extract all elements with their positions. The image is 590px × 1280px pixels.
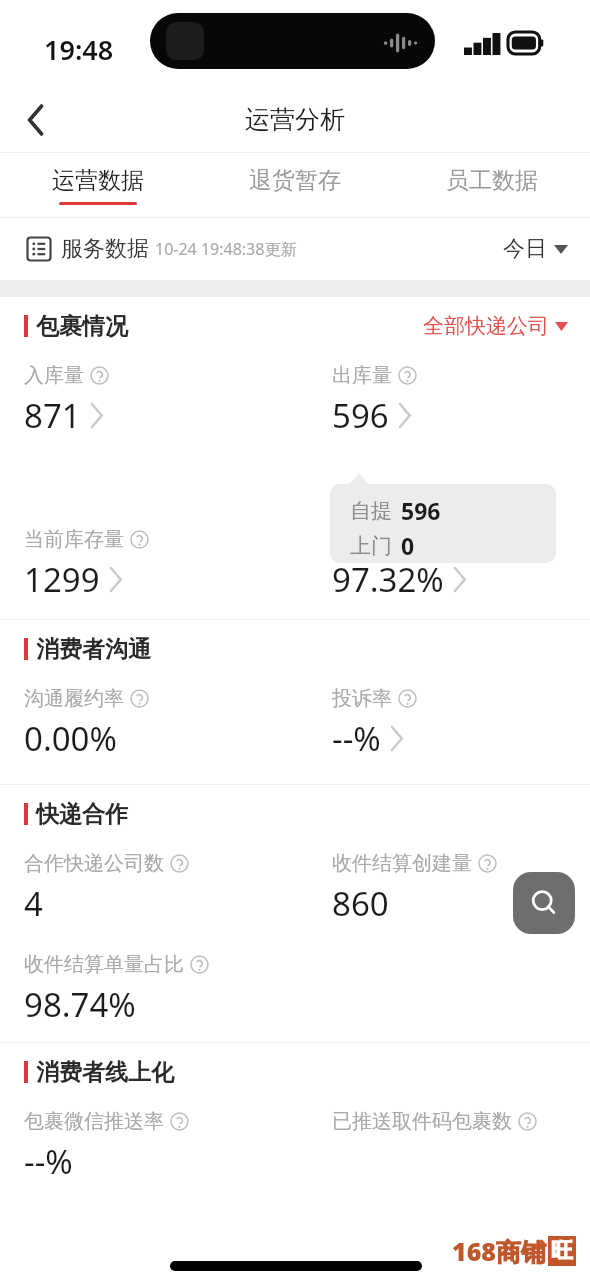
staticText: 运营分析 xyxy=(0,104,590,135)
staticText: 当前库存量 xyxy=(24,527,124,552)
staticText: 包裹微信推送率 xyxy=(24,1109,164,1134)
button[interactable]: 沟通履约率 xyxy=(24,686,149,761)
button[interactable]: 今日 xyxy=(503,235,568,263)
staticText: 旺 xyxy=(551,1237,573,1265)
staticText: 收件结算单量占比 xyxy=(24,952,184,977)
staticText: 出库量 xyxy=(332,363,392,388)
button[interactable]: 收件结算创建量 xyxy=(332,851,497,926)
staticText: 服务数据 xyxy=(61,235,149,263)
button[interactable]: 入库量 xyxy=(24,363,109,438)
staticText: 0.00% xyxy=(24,716,117,761)
button[interactable]: Search xyxy=(513,872,575,934)
button[interactable]: 出库量 xyxy=(332,363,417,438)
staticText: 包裹情况 xyxy=(36,312,128,341)
staticText: 入库量 xyxy=(24,363,84,388)
button[interactable]: 退货暂存 xyxy=(196,153,393,217)
staticText: 19:48 xyxy=(44,31,114,68)
button[interactable]: Back xyxy=(8,92,64,148)
staticText: --% xyxy=(332,716,381,761)
staticText: 今日 xyxy=(503,235,547,263)
staticText: 投诉率 xyxy=(332,686,392,711)
staticText: 快递合作 xyxy=(36,800,128,829)
staticText: 98.74% xyxy=(24,982,136,1027)
staticText: 消费者线上化 xyxy=(36,1058,174,1087)
staticText: 沟通履约率 xyxy=(24,686,124,711)
button[interactable]: 收件结算单量占比 xyxy=(24,952,209,1027)
button[interactable]: 运营数据 xyxy=(0,153,196,217)
staticText: 10-24 19:48:38更新 xyxy=(155,238,297,260)
button[interactable]: 全部快递公司 xyxy=(423,313,568,339)
staticText: --% xyxy=(24,1139,73,1184)
staticText: 合作快递公司数 xyxy=(24,851,164,876)
staticText: 收件结算创建量 xyxy=(332,851,472,876)
button[interactable]: 员工数据 xyxy=(393,153,590,217)
staticText: 全部快递公司 xyxy=(423,313,549,339)
staticText: 1299 xyxy=(24,557,100,602)
staticText: 自提 xyxy=(350,498,392,524)
staticText: 已推送取件码包裹数 xyxy=(332,1109,512,1134)
button[interactable]: 投诉率 xyxy=(332,686,417,761)
staticText: 七天出库率 xyxy=(332,527,432,552)
button[interactable]: 当前库存量 xyxy=(24,527,149,602)
button[interactable]: 合作快递公司数 xyxy=(24,851,189,926)
staticText: 消费者沟通 xyxy=(36,635,151,664)
button[interactable]: 已推送取件码包裹数 xyxy=(332,1109,537,1184)
staticText: 4 xyxy=(24,881,43,926)
button[interactable]: 包裹微信推送率 xyxy=(24,1109,189,1184)
staticText: 运营数据 xyxy=(52,166,144,195)
staticText: 168商铺 xyxy=(452,1234,546,1268)
staticText: 97.32% xyxy=(332,557,444,602)
staticText: 596 xyxy=(401,495,441,526)
staticText: 员工数据 xyxy=(446,166,538,195)
staticText: 退货暂存 xyxy=(249,166,341,195)
staticText: 860 xyxy=(332,881,389,926)
staticText: 596 xyxy=(332,393,389,438)
staticText: 0 xyxy=(401,530,415,561)
staticText: 上门 xyxy=(350,533,392,559)
button[interactable]: 七天出库率 xyxy=(332,527,466,602)
staticText: 871 xyxy=(24,393,81,438)
